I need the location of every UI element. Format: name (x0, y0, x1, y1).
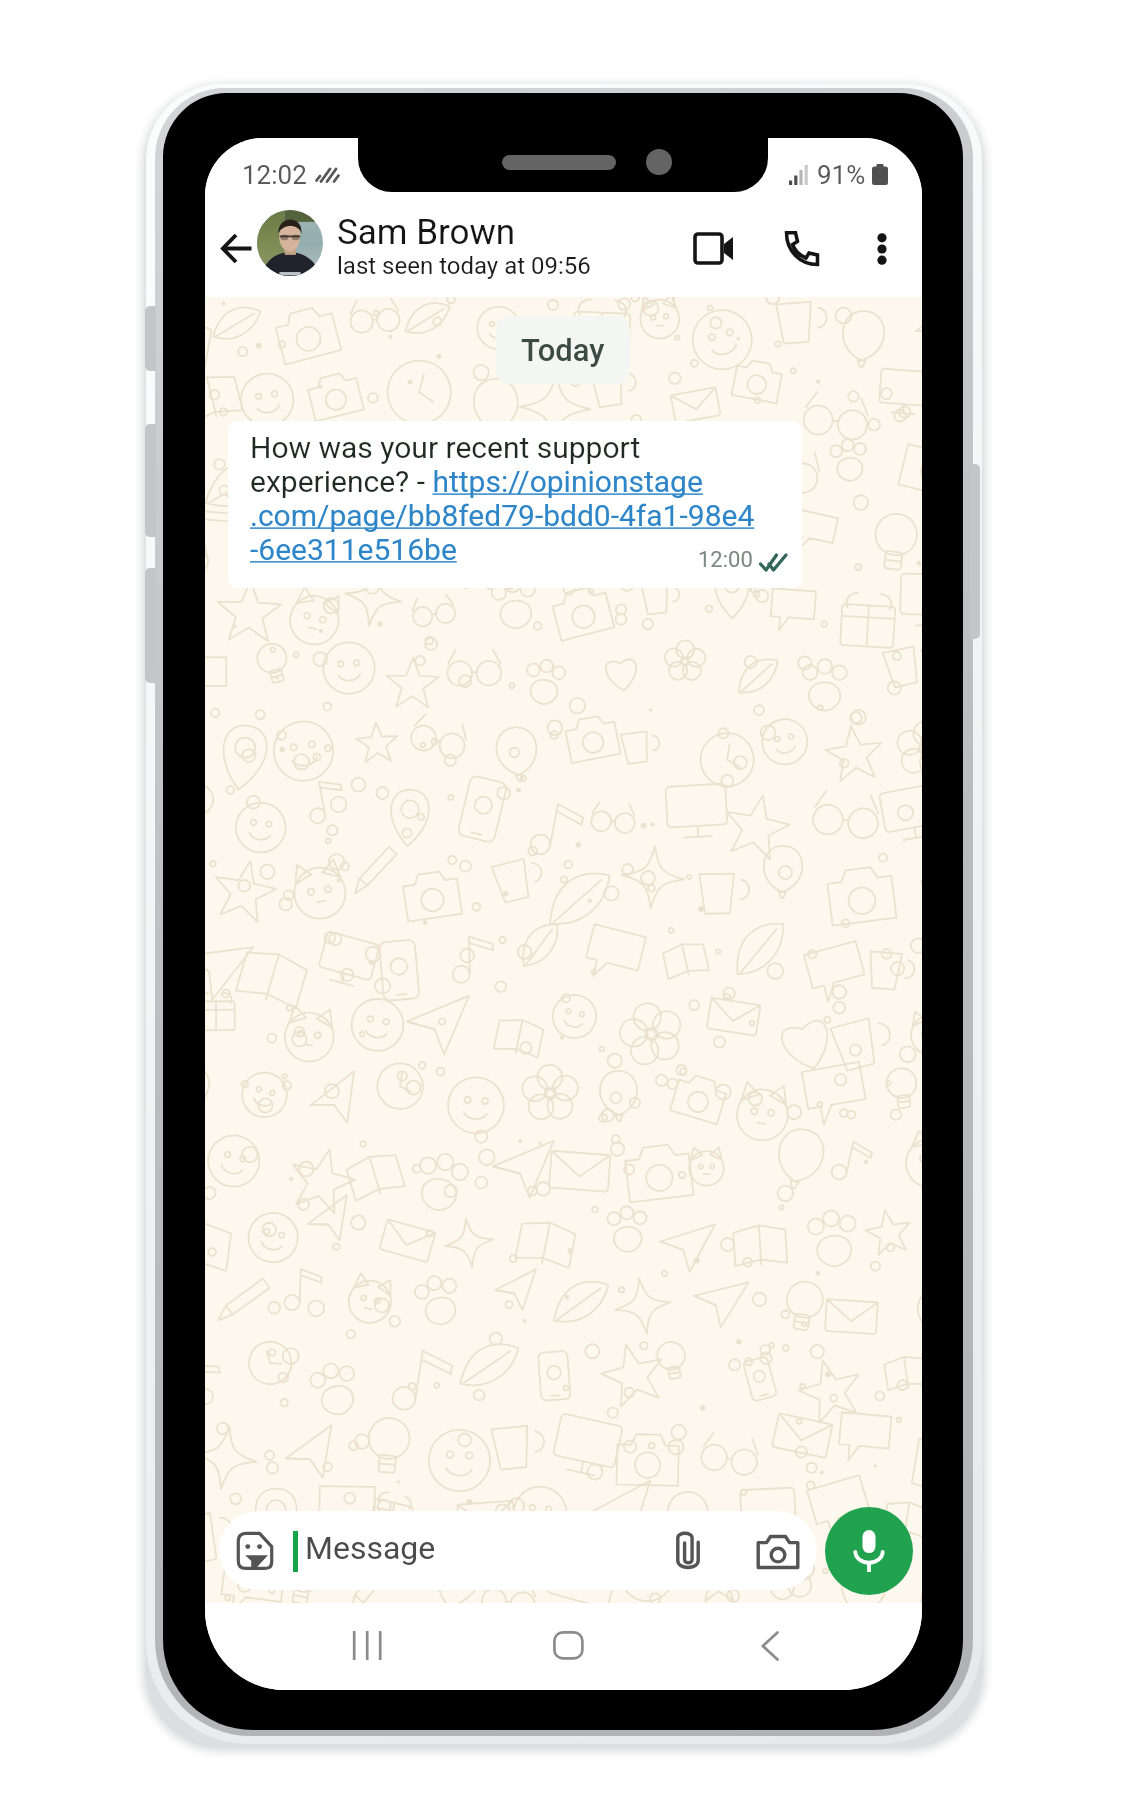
button[interactable]: More options (849, 216, 915, 282)
button[interactable]: Emoji (219, 1511, 817, 1590)
button[interactable]: Camera (756, 1534, 800, 1570)
button[interactable]: Recents (322, 1603, 412, 1690)
staticText: Message (305, 1529, 436, 1567)
staticText: 12:00 (698, 547, 753, 573)
staticText: Today (521, 332, 605, 368)
button[interactable]: Emoji (236, 1531, 274, 1570)
staticText: Sam Brown (337, 212, 516, 253)
button[interactable]: Voice call (769, 216, 835, 282)
button[interactable]: Voice message (825, 1507, 913, 1595)
button[interactable]: Attach (671, 1531, 705, 1571)
button[interactable]: How was your recent support experience? … (228, 421, 802, 588)
button[interactable]: Video call (681, 216, 747, 282)
button[interactable]: Today (496, 316, 630, 384)
staticText: 91% (817, 160, 866, 190)
button[interactable]: Back (725, 1603, 815, 1690)
button[interactable]: Back (205, 215, 269, 281)
staticText: last seen today at 09:56 (337, 252, 591, 280)
staticText: How was your recent support experience? … (250, 430, 790, 567)
button[interactable]: Profile photo (257, 210, 323, 276)
staticText: 12:02 (242, 160, 307, 190)
button[interactable]: Home (523, 1603, 613, 1690)
